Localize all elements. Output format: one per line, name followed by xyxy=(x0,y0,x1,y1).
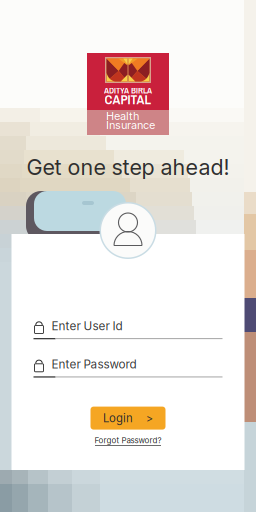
button[interactable]: Login xyxy=(90,407,165,430)
button[interactable]: Forgot Password? xyxy=(94,436,161,446)
staticText: Insurance xyxy=(106,118,155,132)
staticText: > xyxy=(146,412,153,424)
staticText: ADITYA BIRLA xyxy=(104,85,152,96)
staticText: Forgot Password? xyxy=(94,436,161,445)
staticText: Login xyxy=(103,411,133,425)
staticText: Health xyxy=(106,109,139,123)
staticText: Enter User Id xyxy=(51,319,122,333)
staticText: Enter Password xyxy=(51,357,136,371)
staticText: Get one step ahead! xyxy=(26,154,229,180)
staticText: CAPITAL xyxy=(104,90,151,108)
